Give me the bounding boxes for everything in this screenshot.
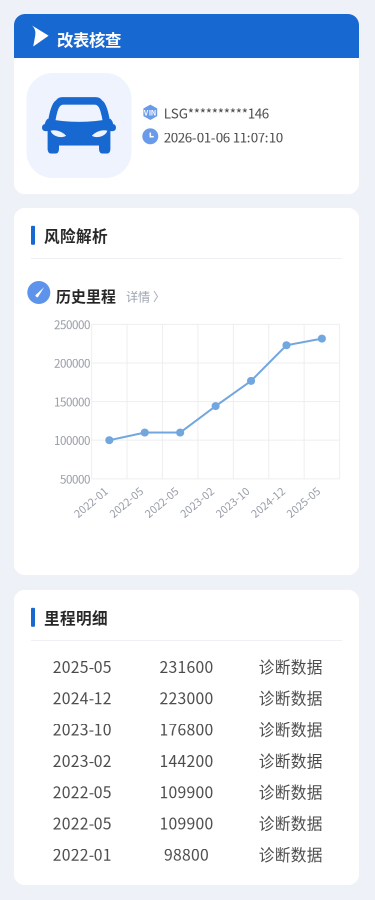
staticText: 109900 [159, 811, 213, 834]
staticText: 2023-10 [53, 717, 112, 740]
staticText: 2022-05 [53, 811, 112, 834]
staticText: 2022-05 [106, 494, 146, 510]
staticText: 2022-05 [141, 494, 181, 510]
staticText: 诊断数据 [259, 811, 323, 834]
staticText: 176800 [159, 717, 213, 740]
staticText: 诊断数据 [259, 655, 323, 677]
staticText: 250000 [54, 316, 90, 333]
staticText: 2025-05 [283, 494, 323, 510]
staticText: 150000 [54, 393, 90, 410]
button[interactable]: 2023-02 [30, 744, 343, 776]
staticText: 诊断数据 [259, 780, 323, 803]
staticText: 2023-02 [177, 494, 217, 510]
staticText: 100000 [54, 432, 90, 448]
staticText: 诊断数据 [259, 843, 323, 865]
staticText: 诊断数据 [259, 717, 323, 740]
button[interactable]: 2022-01 [30, 838, 343, 870]
button[interactable]: 详情 〉 [122, 284, 169, 308]
button[interactable]: 2022-05 [30, 776, 343, 807]
staticText: 2022-01 [53, 843, 112, 865]
staticText: 2022-05 [53, 780, 112, 803]
staticText: 2026-01-06 11:07:10 [164, 127, 283, 146]
staticText: 2024-12 [53, 686, 112, 709]
staticText: 109900 [159, 780, 213, 803]
button[interactable]: 2022-05 [30, 807, 343, 838]
staticText: 2022-01 [70, 494, 110, 510]
button[interactable]: 2024-12 [30, 682, 343, 713]
staticText: 风险解析 [44, 224, 108, 247]
staticText: 2023-02 [53, 749, 112, 771]
staticText: LSG**********146 [164, 103, 269, 122]
staticText: 200000 [54, 354, 90, 371]
staticText: 144200 [159, 749, 213, 771]
staticText: 里程明细 [44, 606, 108, 629]
staticText: 50000 [60, 470, 90, 487]
staticText: 2023-10 [212, 494, 252, 510]
staticText: 历史里程 [56, 285, 116, 306]
button[interactable]: 2025-05 [30, 650, 343, 682]
staticText: 2024-12 [248, 494, 288, 510]
staticText: 2025-05 [53, 655, 112, 677]
staticText: 223000 [159, 686, 213, 709]
staticText: 98800 [164, 843, 209, 865]
staticText: 诊断数据 [259, 749, 323, 771]
staticText: 详情 〉 [126, 287, 165, 305]
staticText: VIN [144, 107, 157, 118]
button[interactable]: 2023-10 [30, 713, 343, 744]
button[interactable]: 改表核查 [14, 14, 359, 58]
staticText: 231600 [159, 655, 213, 677]
staticText: 改表核查 [57, 27, 121, 51]
staticText: 诊断数据 [259, 686, 323, 709]
